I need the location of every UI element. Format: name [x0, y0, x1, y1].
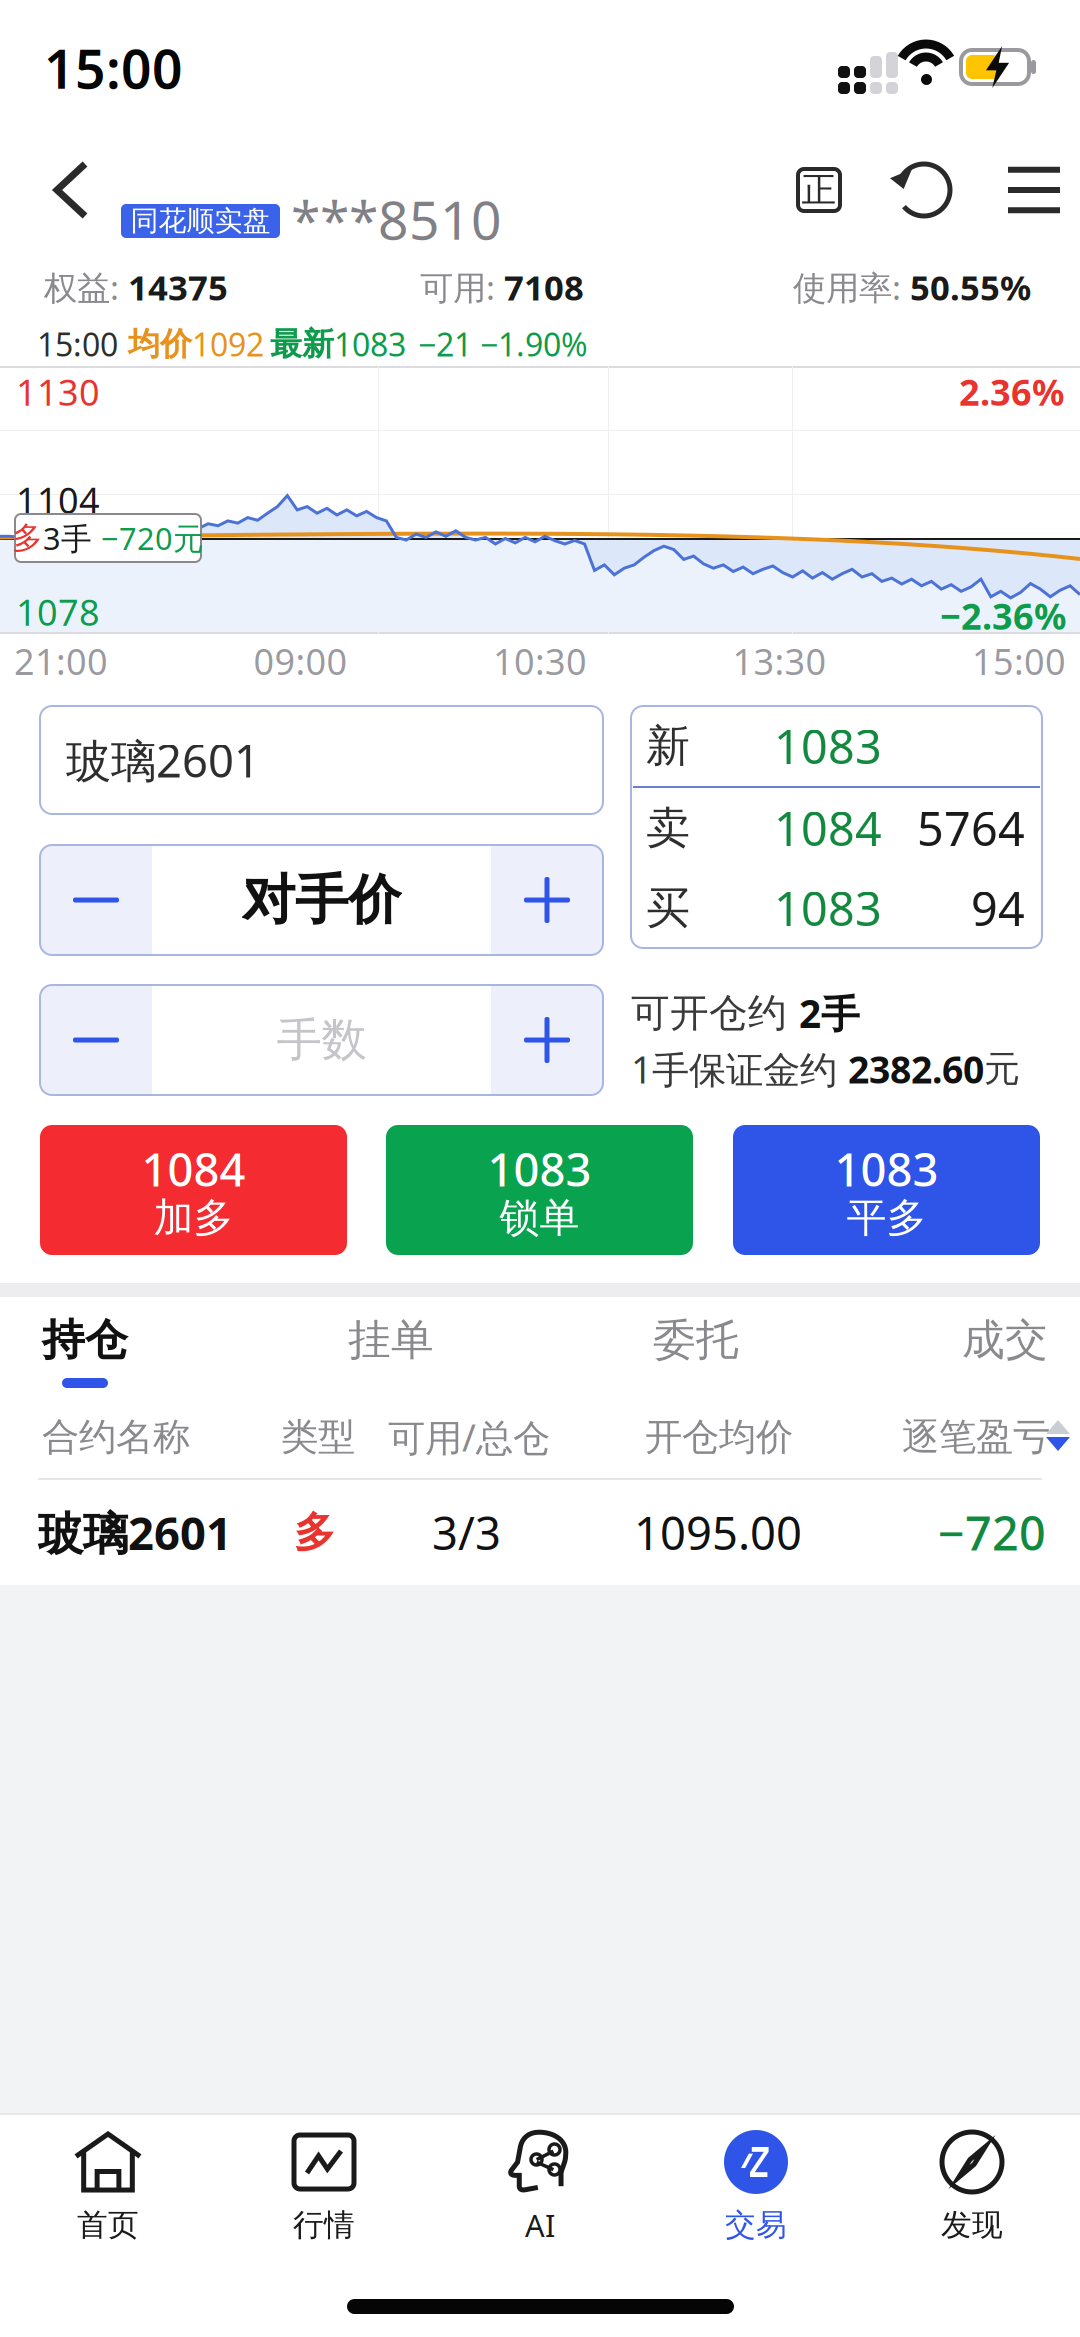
- staticText: 1083: [487, 1139, 591, 1199]
- staticText: 1084: [774, 797, 882, 859]
- button[interactable]: 持仓: [42, 1310, 242, 1370]
- staticText: 同花顺实盘: [130, 204, 270, 238]
- staticText: 7108: [504, 264, 584, 310]
- staticText: 逐笔盈亏: [902, 1414, 1050, 1460]
- staticText: 类型: [281, 1414, 355, 1460]
- button[interactable]: 首页: [0, 2113, 216, 2263]
- staticText: 最新: [270, 324, 334, 364]
- staticText: 15:00: [44, 33, 183, 103]
- staticText: 50.55%: [910, 264, 1031, 310]
- button[interactable]: 玻璃2601: [40, 706, 603, 814]
- staticText: 可用/总仓: [388, 1412, 550, 1462]
- staticText: 可用:: [420, 265, 504, 309]
- staticText: 手数: [276, 1012, 366, 1068]
- button[interactable]: 1084: [40, 1125, 347, 1255]
- staticText: 元: [984, 1047, 1020, 1091]
- staticText: 1104: [16, 476, 100, 524]
- staticText: 均价: [128, 324, 192, 364]
- button[interactable]: 挂单: [308, 1310, 478, 1370]
- staticText: 交易: [725, 2206, 787, 2244]
- staticText: 09:00: [253, 637, 347, 685]
- staticText: 权益:: [44, 265, 128, 309]
- staticText: 5764: [917, 797, 1025, 859]
- staticText: 买: [646, 881, 690, 935]
- button[interactable]: 发现: [864, 2113, 1080, 2263]
- staticText: −720元: [101, 518, 204, 558]
- button[interactable]: 玻璃2601: [0, 1480, 1080, 1585]
- staticText: 15:00: [37, 323, 118, 365]
- button[interactable]: Increase: [491, 845, 603, 955]
- staticText: 多: [12, 519, 43, 557]
- button[interactable]: 行情: [216, 2113, 432, 2263]
- button[interactable]: Decrease: [40, 985, 152, 1095]
- button[interactable]: 1083: [386, 1125, 693, 1255]
- staticText: 多: [294, 1507, 335, 1558]
- button[interactable]: 成交: [922, 1310, 1080, 1370]
- button[interactable]: AI: [432, 2113, 648, 2263]
- staticText: 开仓均价: [645, 1414, 793, 1460]
- staticText: 行情: [293, 2206, 355, 2244]
- button[interactable]: Back: [16, 140, 126, 240]
- staticText: 对手价: [242, 867, 401, 933]
- staticText: 加多: [153, 1193, 233, 1242]
- staticText: 2手: [799, 987, 860, 1039]
- button[interactable]: Order mode: [769, 141, 869, 239]
- staticText: 14375: [128, 264, 228, 310]
- staticText: 1083: [774, 877, 882, 939]
- staticText: −720: [938, 1501, 1046, 1563]
- staticText: 2382.60: [848, 1044, 984, 1094]
- staticText: 2.36%: [959, 368, 1064, 416]
- staticText: 3/3: [432, 1502, 501, 1563]
- staticText: ***8510: [291, 184, 502, 254]
- staticText: 玻璃2601: [38, 1502, 232, 1563]
- staticText: −1.90%: [480, 323, 588, 365]
- button[interactable]: Increase: [491, 985, 603, 1095]
- staticText: 委托: [653, 1314, 739, 1366]
- staticText: 使用率:: [793, 265, 910, 309]
- staticText: 21:00: [14, 637, 108, 685]
- staticText: 94: [971, 877, 1025, 939]
- staticText: 13:30: [732, 637, 826, 685]
- staticText: AI: [525, 2205, 555, 2245]
- staticText: 1手保证金约: [631, 1044, 848, 1094]
- staticText: 发现: [941, 2206, 1003, 2244]
- staticText: 1084: [141, 1139, 245, 1199]
- staticText: 可开仓约: [631, 989, 799, 1037]
- staticText: 1095.00: [634, 1502, 802, 1563]
- staticText: 1092: [192, 323, 264, 365]
- staticText: 1078: [16, 588, 100, 636]
- staticText: 锁单: [499, 1193, 579, 1242]
- staticText: 持仓: [42, 1314, 128, 1366]
- button[interactable]: Refresh: [874, 141, 974, 239]
- button[interactable]: 委托: [613, 1310, 783, 1370]
- staticText: 正: [801, 169, 836, 211]
- staticText: 首页: [77, 2206, 139, 2244]
- staticText: −2.36%: [940, 592, 1066, 640]
- staticText: 1083: [334, 323, 406, 365]
- staticText: 卖: [646, 801, 690, 855]
- button[interactable]: 交易: [648, 2113, 864, 2263]
- staticText: 1083: [774, 715, 882, 777]
- button[interactable]: Decrease: [40, 845, 152, 955]
- staticText: 1130: [16, 368, 100, 416]
- staticText: 1083: [834, 1139, 938, 1199]
- staticText: 平多: [846, 1193, 926, 1242]
- staticText: 挂单: [348, 1314, 434, 1366]
- staticText: 15:00: [972, 637, 1066, 685]
- staticText: 新: [646, 719, 690, 773]
- staticText: −21: [418, 323, 472, 365]
- staticText: 3手: [43, 518, 101, 558]
- staticText: 合约名称: [42, 1414, 190, 1460]
- staticText: 玻璃2601: [66, 730, 260, 790]
- button[interactable]: 1083: [733, 1125, 1040, 1255]
- button[interactable]: Menu: [985, 141, 1080, 239]
- staticText: 成交: [962, 1314, 1048, 1366]
- staticText: 10:30: [493, 637, 587, 685]
